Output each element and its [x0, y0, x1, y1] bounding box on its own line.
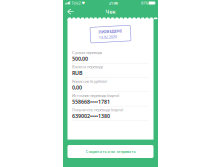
button[interactable]: Back: [64, 6, 75, 17]
button[interactable]: Сохранить или отправить: [67, 145, 153, 158]
staticText: ПРОВЕДЕНО: [98, 29, 122, 34]
staticText: Валюта перевода: [72, 64, 103, 69]
staticText: 81%: [141, 0, 148, 6]
staticText: 500,00: [72, 55, 88, 62]
staticText: Получатель перевода (карта): [72, 107, 123, 112]
staticText: 639002••••1380: [72, 112, 110, 119]
staticText: Tele2: [72, 0, 81, 6]
staticText: ♥: [81, 1, 85, 5]
staticText: Источник перевода (карта): [72, 93, 119, 98]
staticText: RUB: [72, 69, 83, 77]
staticText: 13.02.2020: [98, 34, 116, 39]
staticText: 0,00: [72, 84, 82, 91]
staticText: Комиссия (в рублях): [72, 78, 107, 84]
staticText: Чек: [105, 8, 115, 15]
staticText: Сумма перевода: [72, 50, 102, 55]
staticText: Сохранить или отправить: [85, 149, 135, 154]
staticText: 558668••••1781: [72, 98, 110, 105]
staticText: 21:48: [109, 0, 118, 6]
